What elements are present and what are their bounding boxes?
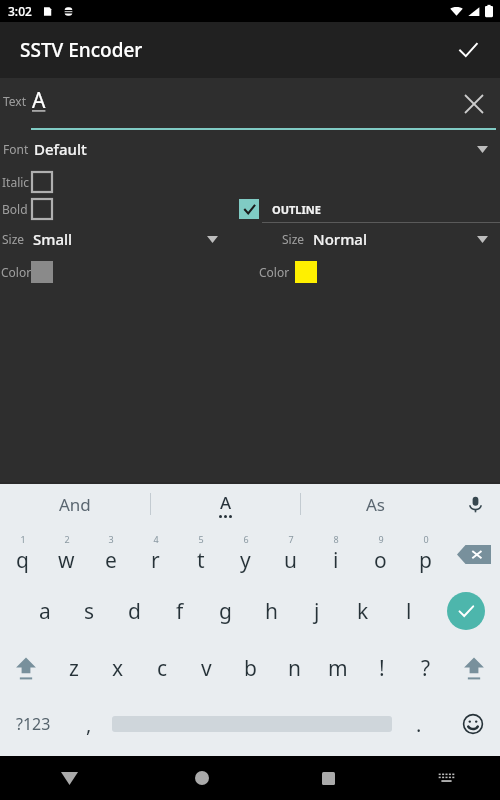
staticText: m <box>328 654 348 683</box>
staticText: Normal <box>313 229 367 249</box>
button[interactable]: s <box>67 582 112 640</box>
staticText: r <box>151 546 160 575</box>
button[interactable]: v <box>184 640 228 696</box>
staticText: x <box>112 654 124 683</box>
staticText: v <box>201 654 212 683</box>
button[interactable]: Emoji <box>446 696 500 752</box>
staticText: k <box>357 597 369 626</box>
staticText: 9 <box>378 533 384 545</box>
staticText: Size <box>2 231 25 247</box>
button[interactable]: Clear text <box>452 82 496 126</box>
staticText: n <box>288 654 301 683</box>
staticText: 3:02 <box>8 3 32 19</box>
staticText: As <box>366 493 386 516</box>
button[interactable]: k <box>340 582 386 640</box>
staticText: Text <box>3 93 27 109</box>
button[interactable]: Voice input <box>450 484 500 524</box>
button[interactable]: 7 <box>268 526 313 582</box>
button[interactable]: Space <box>112 696 392 752</box>
button[interactable]: d <box>112 582 157 640</box>
button[interactable]: ?123 <box>0 696 66 752</box>
button[interactable]: Switch keyboard <box>392 756 500 800</box>
button[interactable]: 1 <box>0 526 44 582</box>
staticText: 7 <box>288 533 294 545</box>
button[interactable]: z <box>52 640 96 696</box>
button[interactable]: 8 <box>313 526 358 582</box>
button[interactable]: 3 <box>88 526 133 582</box>
button[interactable]: m <box>316 640 360 696</box>
button[interactable]: 9 <box>358 526 403 582</box>
staticText: 8 <box>333 533 339 545</box>
staticText: ! <box>379 654 385 683</box>
button[interactable]: Backspace <box>448 526 500 582</box>
button[interactable]: Italic <box>31 171 53 193</box>
button[interactable]: Done <box>444 26 492 74</box>
button[interactable]: Font <box>0 130 500 168</box>
button[interactable]: Home <box>138 756 265 800</box>
staticText: A <box>220 491 232 514</box>
button[interactable]: c <box>140 640 184 696</box>
staticText: Color <box>259 264 290 280</box>
staticText: Color <box>1 264 32 280</box>
staticText: d <box>128 597 141 626</box>
button[interactable]: A <box>151 484 300 524</box>
staticText: OUTLINE <box>272 202 321 217</box>
button[interactable]: Enter <box>432 582 500 640</box>
button[interactable]: ? <box>404 640 448 696</box>
staticText: , <box>86 711 92 738</box>
button[interactable]: 4 <box>133 526 178 582</box>
staticText: ?123 <box>16 713 51 735</box>
button[interactable]: g <box>202 582 248 640</box>
staticText: Italic <box>2 174 30 190</box>
button[interactable]: Size <box>260 223 500 255</box>
staticText: 4 <box>153 533 159 545</box>
button[interactable]: l <box>386 582 432 640</box>
button[interactable]: 5 <box>178 526 223 582</box>
button[interactable]: Bold <box>31 198 53 220</box>
staticText: p <box>419 546 432 575</box>
button[interactable]: f <box>157 582 202 640</box>
button[interactable]: a <box>22 582 67 640</box>
button[interactable]: , <box>66 696 112 752</box>
staticText: Small <box>33 229 73 249</box>
staticText: q <box>16 546 29 575</box>
staticText: j <box>314 597 320 626</box>
staticText: b <box>244 654 257 683</box>
button[interactable]: 0 <box>403 526 448 582</box>
button[interactable]: . <box>392 696 446 752</box>
staticText: i <box>333 546 339 575</box>
staticText: Font <box>3 141 29 157</box>
button[interactable]: As <box>301 484 450 524</box>
button[interactable]: x <box>96 640 140 696</box>
button[interactable]: And <box>0 484 150 524</box>
button[interactable]: OUTLINE <box>238 198 321 220</box>
staticText: Default <box>34 139 87 159</box>
staticText: a <box>39 597 51 626</box>
button[interactable]: 2 <box>44 526 88 582</box>
staticText: . <box>416 711 422 738</box>
staticText: h <box>265 597 278 626</box>
button[interactable]: Recent apps <box>265 756 392 800</box>
staticText: 3 <box>108 533 114 545</box>
button[interactable]: Shift <box>448 640 500 696</box>
staticText: 0 <box>423 533 429 545</box>
button[interactable]: j <box>294 582 340 640</box>
staticText: z <box>69 654 79 683</box>
button[interactable]: h <box>248 582 294 640</box>
button[interactable]: ! <box>360 640 404 696</box>
staticText: Bold <box>2 201 28 217</box>
staticText: c <box>157 654 168 683</box>
button[interactable]: 6 <box>223 526 268 582</box>
staticText: ? <box>421 654 431 683</box>
button[interactable]: n <box>272 640 316 696</box>
staticText: f <box>176 597 184 626</box>
button[interactable]: Back <box>0 756 138 800</box>
staticText: s <box>84 597 95 626</box>
button[interactable]: Size <box>0 223 230 255</box>
button[interactable]: b <box>228 640 272 696</box>
staticText: 2 <box>64 533 70 545</box>
staticText: t <box>197 546 205 575</box>
button[interactable]: Shift <box>0 640 52 696</box>
